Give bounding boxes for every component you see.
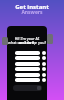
- staticText: what can I do for you?: [7, 40, 47, 45]
- button[interactable]: Feature card right: [47, 34, 53, 44]
- button[interactable]: Feature card left: [2, 37, 8, 45]
- button[interactable]: [15, 67, 46, 71]
- staticText: Hi! I'm your AI assistant,: [7, 36, 47, 45]
- button[interactable]: [15, 78, 46, 82]
- button[interactable]: Message input: [13, 85, 42, 91]
- staticText: Get instant: [0, 3, 64, 11]
- staticText: Answers: [0, 9, 64, 16]
- button[interactable]: [15, 62, 46, 66]
- button[interactable]: [15, 56, 46, 60]
- button[interactable]: [15, 51, 46, 55]
- button[interactable]: [15, 73, 46, 77]
